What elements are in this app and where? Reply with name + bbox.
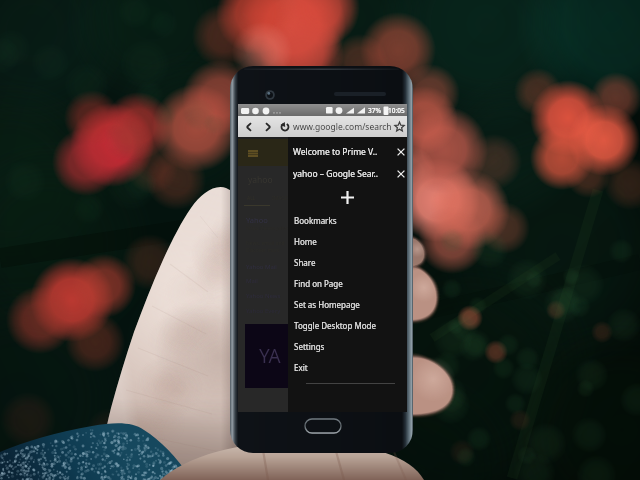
button[interactable]: Bookmark	[392, 116, 407, 137]
staticText: Home	[294, 236, 317, 247]
staticText: yahoo	[248, 174, 273, 186]
button[interactable]: Set as Homepage	[288, 294, 407, 315]
button[interactable]: Home	[288, 231, 407, 252]
button[interactable]: Settings	[288, 336, 407, 357]
staticText: Find on Page	[294, 278, 343, 289]
button[interactable]: Welcome to Prime V..	[288, 141, 407, 163]
button[interactable]: Bookmarks	[288, 210, 407, 231]
button[interactable]: Back	[239, 116, 258, 137]
staticText: Exit	[294, 362, 308, 373]
staticText: Yahoo Mail	[246, 263, 277, 271]
button[interactable]: Find on Page	[288, 273, 407, 294]
staticText: Toggle Desktop Mode	[294, 320, 376, 331]
staticText: Yahoo	[246, 215, 268, 225]
button[interactable]: yahoo – Google Sear..	[288, 163, 407, 185]
button[interactable]: Share	[288, 252, 407, 273]
staticText: https://www.yahoo.	[246, 225, 292, 232]
button[interactable]: Reload	[277, 116, 293, 137]
staticText: yahoo – Google Sear..	[293, 168, 394, 180]
button[interactable]: Home	[303, 415, 343, 437]
staticText: 37%	[368, 106, 381, 115]
staticText: Settings	[294, 341, 325, 352]
staticText: 10:05	[388, 106, 405, 115]
staticText: Yahoo Every	[246, 307, 281, 315]
staticText: IMAGES	[272, 195, 291, 202]
staticText: YA	[259, 343, 281, 369]
staticText: Bookmarks	[294, 215, 337, 226]
button[interactable]: Exit	[288, 357, 407, 378]
staticText: Set as Homepage	[294, 299, 360, 310]
staticText: Yahoo News	[246, 292, 281, 300]
staticText: Mail	[246, 277, 258, 285]
button[interactable]: Forward	[258, 116, 277, 137]
staticText: Welcome to Prime V..	[293, 146, 394, 158]
staticText: www.google.com/search	[293, 121, 392, 133]
button[interactable]: New tab	[288, 185, 407, 210]
staticText: Share	[294, 257, 316, 268]
button[interactable]: Toggle Desktop Mode	[288, 315, 407, 336]
